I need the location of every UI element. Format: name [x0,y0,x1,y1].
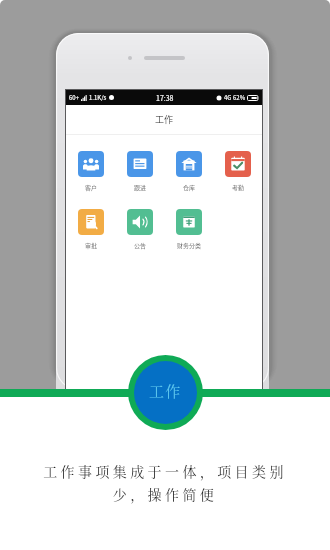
button[interactable]: 财务分类 [176,209,202,250]
button[interactable]: 审批 [78,209,104,250]
staticText: 仓库 [183,183,196,192]
staticText: 审批 [85,241,98,250]
staticText: 公告 [134,241,147,250]
staticText: 工作 [155,113,174,126]
button[interactable]: 仓库 [176,151,202,192]
button[interactable]: 工作 [128,355,203,430]
staticText: 考勤 [232,183,245,192]
staticText: 17:38 [156,93,174,103]
staticText: 财务分类 [177,241,202,250]
staticText: 工作事项集成于一体，项目类别 少，操作简便 [43,461,287,504]
staticText: 工作 [149,380,182,402]
button[interactable]: 跟进 [127,151,153,192]
staticText: 跟进 [134,183,147,192]
button[interactable]: 工作 [66,105,262,134]
staticText: 4G [224,93,232,102]
staticText: 60+ [69,93,79,102]
button[interactable]: 公告 [127,209,153,250]
button[interactable]: 客户 [78,151,104,192]
button[interactable]: 考勤 [225,151,251,192]
staticText: 62% [233,93,246,102]
staticText: 客户 [85,183,98,192]
staticText: 1.1K/s [89,93,107,102]
